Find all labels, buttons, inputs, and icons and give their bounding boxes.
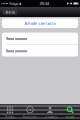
staticText: Añadir contacto: [24, 21, 55, 26]
button[interactable]: Atrás: [2, 9, 17, 15]
staticText: 9xxx xxxxxx: [6, 36, 27, 41]
button[interactable]: Añadir contacto: [2, 18, 78, 28]
staticText: Yoigo: [9, 1, 18, 6]
button[interactable]: Buscar: [60, 104, 80, 120]
button[interactable]: 9xxx xxxxxx: [2, 32, 78, 44]
staticText: 09:34: [40, 1, 49, 6]
staticText: Contactos: [43, 115, 56, 119]
staticText: Buscar: [66, 115, 74, 119]
staticText: 6xxx xxxxxx: [6, 48, 27, 53]
staticText: Teclado: [5, 115, 15, 119]
staticText: Recientes: [23, 115, 37, 119]
button[interactable]: Recientes: [20, 104, 40, 120]
button[interactable]: Teclado: [0, 104, 20, 120]
button[interactable]: 6xxx xxxxxx: [2, 45, 78, 56]
button[interactable]: Contactos: [40, 104, 60, 120]
staticText: Atrás: [5, 9, 15, 15]
